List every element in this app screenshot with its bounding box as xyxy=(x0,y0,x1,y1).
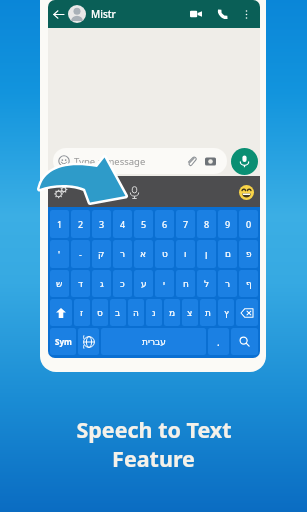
staticText: Type a message xyxy=(74,155,146,168)
button[interactable]: ' xyxy=(50,240,69,268)
staticText: ח xyxy=(183,279,189,289)
button[interactable]: 7 xyxy=(176,210,195,238)
staticText: ו xyxy=(184,249,187,259)
button[interactable]: ר xyxy=(218,270,237,297)
button[interactable]: י xyxy=(155,270,174,297)
staticText: ש xyxy=(56,279,63,289)
staticText: נ xyxy=(152,308,156,318)
staticText: ' xyxy=(58,248,61,260)
button[interactable]: Type a message xyxy=(53,148,227,174)
staticText: עברית xyxy=(142,337,166,347)
button[interactable]: Attach xyxy=(184,154,198,168)
button[interactable]: - xyxy=(71,240,90,268)
button[interactable]: נ xyxy=(146,299,162,326)
staticText: 5 xyxy=(141,218,147,230)
button[interactable]: 9 xyxy=(218,210,237,238)
button[interactable]: ק xyxy=(92,240,111,268)
staticText: ן xyxy=(205,249,208,259)
button[interactable]: ת xyxy=(200,299,216,326)
button[interactable]: ש xyxy=(50,270,69,297)
button[interactable]: More options xyxy=(237,5,255,23)
button[interactable]: Speech to text xyxy=(124,182,144,202)
staticText: ק xyxy=(98,249,105,259)
button[interactable]: 6 xyxy=(155,210,174,238)
button[interactable]: פ xyxy=(239,240,258,268)
staticText: כ xyxy=(120,279,125,289)
button[interactable]: ט xyxy=(155,240,174,268)
button[interactable]: ן xyxy=(197,240,216,268)
button[interactable]: ח xyxy=(176,270,195,297)
staticText: Mistr xyxy=(91,7,116,21)
button[interactable]: Emoji xyxy=(237,183,255,201)
button[interactable]: ץ xyxy=(218,299,234,326)
button[interactable]: 5 xyxy=(134,210,153,238)
button[interactable]: Camera xyxy=(203,154,217,168)
button[interactable]: ג xyxy=(92,270,111,297)
staticText: 3 xyxy=(99,218,105,230)
button[interactable]: Sym xyxy=(50,328,76,355)
button[interactable]: ו xyxy=(176,240,195,268)
button[interactable]: Voice message xyxy=(231,148,258,175)
staticText: ז xyxy=(80,308,84,318)
staticText: ע xyxy=(141,279,147,289)
button[interactable]: ם xyxy=(218,240,237,268)
staticText: 1 xyxy=(57,218,63,230)
button[interactable]: מ xyxy=(164,299,180,326)
staticText: . xyxy=(217,335,220,349)
staticText: ל xyxy=(204,279,210,289)
button[interactable]: 8 xyxy=(197,210,216,238)
button[interactable]: ה xyxy=(128,299,144,326)
button[interactable]: Call xyxy=(212,4,232,24)
button[interactable]: Video call xyxy=(186,4,206,24)
staticText: 9 xyxy=(225,218,231,230)
button[interactable]: א xyxy=(134,240,153,268)
button[interactable]: ע xyxy=(134,270,153,297)
button[interactable]: 3 xyxy=(92,210,111,238)
button[interactable]: Change language xyxy=(78,328,99,355)
button[interactable]: ב xyxy=(110,299,126,326)
staticText: 8 xyxy=(204,218,210,230)
staticText: - xyxy=(79,248,82,260)
staticText: ה xyxy=(133,308,139,318)
staticText: Sym xyxy=(55,336,72,347)
staticText: 7 xyxy=(183,218,189,230)
button[interactable]: 4 xyxy=(113,210,132,238)
staticText: י xyxy=(163,279,166,289)
button[interactable]: ס xyxy=(92,299,108,326)
staticText: 6 xyxy=(162,218,168,230)
button[interactable]: Back xyxy=(48,0,260,28)
staticText: ב xyxy=(115,308,121,318)
staticText: ס xyxy=(97,308,103,318)
button[interactable]: ד xyxy=(71,270,90,297)
button[interactable]: ר xyxy=(113,240,132,268)
button[interactable]: צ xyxy=(182,299,198,326)
staticText: א xyxy=(140,249,147,259)
staticText: ם xyxy=(225,249,231,259)
staticText: ף xyxy=(246,279,252,289)
staticText: מ xyxy=(169,308,176,318)
button[interactable]: Shift xyxy=(50,299,72,326)
button[interactable]: ל xyxy=(197,270,216,297)
button[interactable]: . xyxy=(208,328,229,355)
button[interactable]: Settings xyxy=(52,183,70,201)
staticText: צ xyxy=(187,308,193,318)
staticText: פ xyxy=(246,249,252,259)
button[interactable]: כ xyxy=(113,270,132,297)
button[interactable]: ף xyxy=(239,270,258,297)
button[interactable]: 2 xyxy=(71,210,90,238)
staticText: Speech to Text xyxy=(76,415,232,444)
button[interactable]: 0 xyxy=(239,210,258,238)
staticText: ד xyxy=(78,279,83,289)
button[interactable]: עברית xyxy=(101,328,206,355)
button[interactable]: Back xyxy=(50,6,67,23)
button[interactable]: 1 xyxy=(50,210,69,238)
button[interactable]: ז xyxy=(74,299,90,326)
staticText: ר xyxy=(120,249,126,259)
staticText: ת xyxy=(205,308,211,318)
staticText: ג xyxy=(100,279,104,289)
button[interactable]: Search xyxy=(231,328,258,355)
staticText: Feature xyxy=(112,444,195,473)
staticText: ט xyxy=(162,249,168,259)
button[interactable]: Backspace xyxy=(236,299,258,326)
staticText: 0 xyxy=(246,218,252,230)
